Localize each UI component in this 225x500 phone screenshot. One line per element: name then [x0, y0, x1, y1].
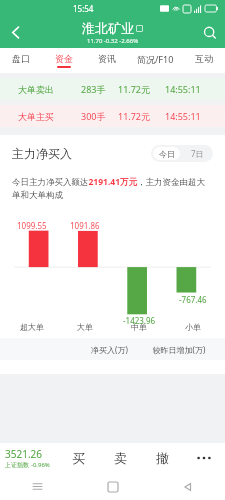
staticText: 资金	[55, 53, 73, 64]
staticText: 大单主买	[18, 111, 54, 122]
staticText: 1099.55	[17, 220, 47, 231]
button[interactable]: 大单卖出	[0, 78, 225, 100]
staticText: 11.72元	[118, 110, 151, 122]
staticText: 今日主力净买入额达2191.41万元，主力资金由超大单和大单构成	[12, 176, 213, 200]
staticText: 净买入(万)	[78, 344, 141, 355]
staticText: 买	[72, 450, 85, 466]
staticText: 主力净买入	[12, 146, 72, 161]
button[interactable]: Recents	[0, 473, 75, 500]
staticText: 300手	[81, 110, 106, 122]
button[interactable]: 互动	[182, 48, 225, 73]
staticText: 淮北矿业	[82, 20, 134, 36]
staticText: 14:55:11	[165, 83, 201, 95]
staticText: -1423.96	[123, 315, 156, 326]
button[interactable]: 简况/F10	[128, 48, 182, 73]
button[interactable]: 3521.26	[0, 443, 57, 473]
staticText: 11.70 -0.32 -2.66%	[87, 37, 139, 45]
staticText: 3521.26	[5, 447, 42, 461]
staticText: 撤	[156, 450, 169, 466]
button[interactable]: 买	[57, 443, 99, 473]
staticText: 较昨日增加(万)	[141, 344, 217, 355]
button[interactable]: Back	[150, 473, 225, 500]
staticText: 简况/F10	[137, 53, 174, 65]
staticText: 大单卖出	[18, 84, 54, 95]
staticText: 7日	[191, 148, 204, 159]
staticText: 资讯	[98, 53, 116, 64]
button[interactable]: 资讯	[85, 48, 128, 73]
button[interactable]: 今日	[153, 147, 180, 160]
staticText: 盘口	[12, 53, 30, 64]
staticText: -767.46	[179, 294, 207, 305]
staticText: 中单	[131, 322, 147, 332]
button[interactable]: Back	[0, 17, 30, 48]
button[interactable]: 盘口	[0, 48, 42, 73]
staticText: 卖	[114, 450, 127, 466]
button[interactable]: More	[183, 443, 225, 473]
button[interactable]: Search	[195, 17, 225, 48]
staticText: 小单	[185, 322, 201, 332]
staticText: 上证指数	[5, 461, 29, 469]
button[interactable]: 大单主买	[0, 105, 225, 127]
staticText: 14:55:11	[165, 110, 201, 122]
staticText: 11.72元	[118, 83, 151, 95]
staticText: 1091.86	[70, 220, 100, 231]
button[interactable]: 卖	[99, 443, 141, 473]
staticText: 今日	[159, 149, 175, 159]
staticText: 283手	[81, 83, 106, 95]
button[interactable]: 7日	[182, 145, 213, 162]
button[interactable]: 撤	[141, 443, 183, 473]
staticText: -0.96%	[31, 461, 50, 469]
staticText: 15:54	[73, 3, 94, 14]
staticText: 超大单	[20, 322, 44, 332]
staticText: 互动	[195, 53, 213, 64]
button[interactable]: 资金	[42, 48, 85, 73]
button[interactable]: Home	[75, 473, 150, 500]
staticText: 大单	[77, 322, 93, 332]
